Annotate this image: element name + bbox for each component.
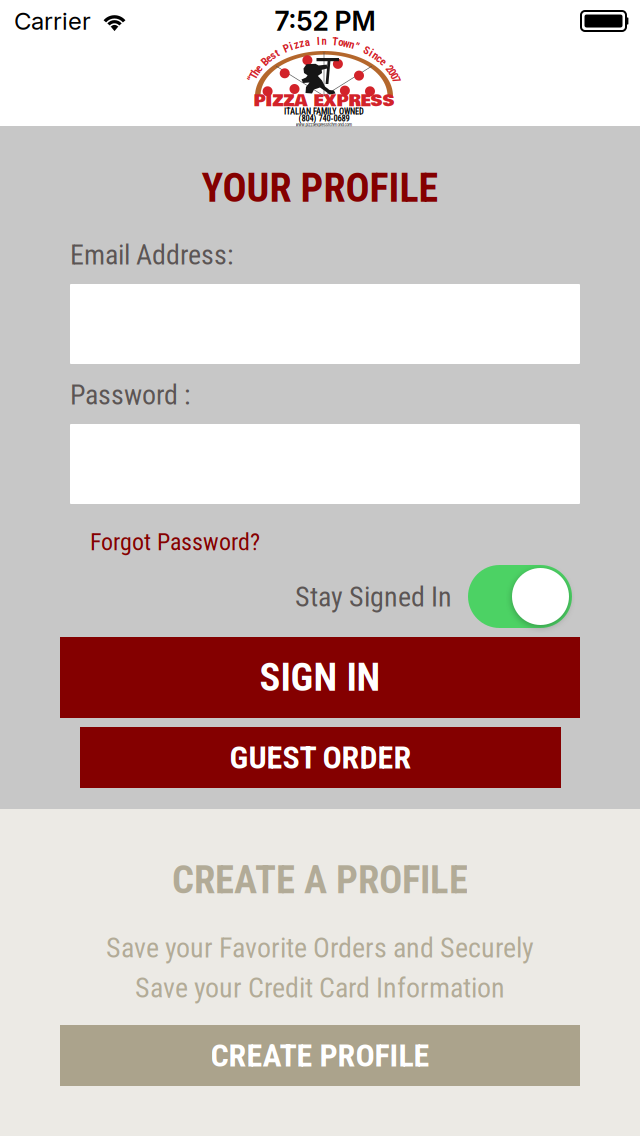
staticText: i	[290, 40, 293, 53]
staticText: Carrier	[14, 6, 91, 35]
button[interactable]: SIGN IN	[60, 637, 580, 718]
staticText: CREATE PROFILE	[210, 1037, 429, 1074]
staticText: Save your Credit Card Information	[135, 972, 505, 1004]
staticText: n	[321, 35, 326, 47]
staticText: SIGN IN	[259, 655, 380, 700]
button[interactable]: GUEST ORDER	[80, 727, 561, 788]
button[interactable]: CREATE PROFILE	[60, 1025, 580, 1086]
staticText: ITALIAN FAMILY OWNED	[284, 106, 364, 116]
staticText: YOUR PROFILE	[201, 165, 438, 211]
staticText: Save your Favorite Orders and Securely	[106, 932, 534, 964]
staticText: PIZZA EXPRESS	[253, 88, 394, 114]
staticText: h	[253, 66, 258, 78]
button[interactable]: Forgot Password?	[90, 526, 270, 558]
staticText: t	[275, 47, 278, 59]
staticText: T	[251, 70, 257, 82]
staticText: 7	[394, 73, 399, 86]
staticText: 0	[389, 66, 394, 78]
staticText: Password :	[70, 379, 191, 411]
staticText: ”	[355, 40, 359, 53]
staticText: P	[283, 42, 289, 55]
staticText: Email Address:	[70, 239, 234, 271]
staticText: 7:52 PM	[274, 5, 375, 37]
staticText: z	[294, 38, 299, 51]
staticText: 0	[392, 70, 397, 82]
staticText: www.pizzaexpressrichmond.com	[295, 122, 352, 127]
staticText	[385, 59, 387, 71]
staticText: e	[380, 55, 385, 68]
staticText: T	[332, 35, 338, 48]
staticText: n	[373, 49, 378, 62]
staticText: c	[377, 52, 382, 65]
staticText: e	[256, 62, 261, 75]
staticText: i	[369, 47, 372, 59]
staticText: e	[266, 52, 271, 65]
staticText: GUEST ORDER	[229, 739, 411, 776]
staticText: a	[305, 36, 310, 49]
staticText: (804) 740-0689	[298, 113, 349, 123]
staticText: Forgot Password?	[90, 528, 260, 556]
staticText: B	[262, 55, 268, 68]
staticText: “	[250, 73, 254, 86]
staticText: Stay Signed In	[295, 581, 452, 613]
staticText: z	[299, 37, 304, 50]
staticText: n	[349, 38, 354, 51]
staticText: CREATE A PROFILE	[172, 857, 468, 903]
staticText: I	[317, 35, 320, 47]
staticText: w	[343, 37, 350, 50]
staticText: o	[338, 36, 343, 49]
staticText: S	[363, 44, 369, 57]
button[interactable]: Stay Signed In	[468, 565, 572, 628]
staticText: 2	[387, 62, 392, 75]
staticText: s	[270, 49, 275, 62]
staticText	[261, 59, 263, 71]
